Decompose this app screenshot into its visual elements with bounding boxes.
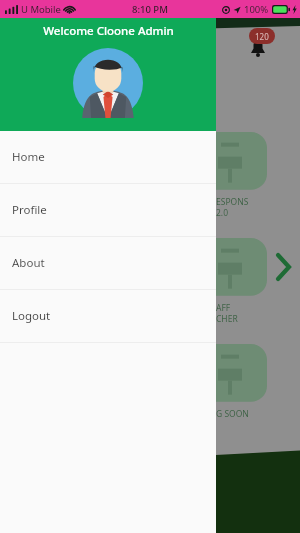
staticText: 120 [255, 31, 269, 42]
staticText: U Mobile [21, 3, 61, 16]
staticText: Logout [12, 308, 51, 324]
staticText: G SOON [216, 408, 249, 420]
staticText: 100% [244, 3, 269, 16]
button[interactable]: Home [0, 131, 216, 183]
staticText: AFF CHER [216, 302, 238, 324]
staticText: ESPONS 2.0 [216, 196, 249, 218]
staticText: 8:10 PM [132, 3, 168, 16]
button[interactable]: Profile [0, 184, 216, 236]
staticText: Welcome Cloone Admin [43, 23, 174, 39]
button[interactable]: About [0, 237, 216, 289]
button[interactable]: Logout [0, 290, 216, 342]
staticText: About [12, 255, 45, 271]
staticText: Home [12, 149, 45, 165]
staticText: Profile [12, 202, 47, 218]
